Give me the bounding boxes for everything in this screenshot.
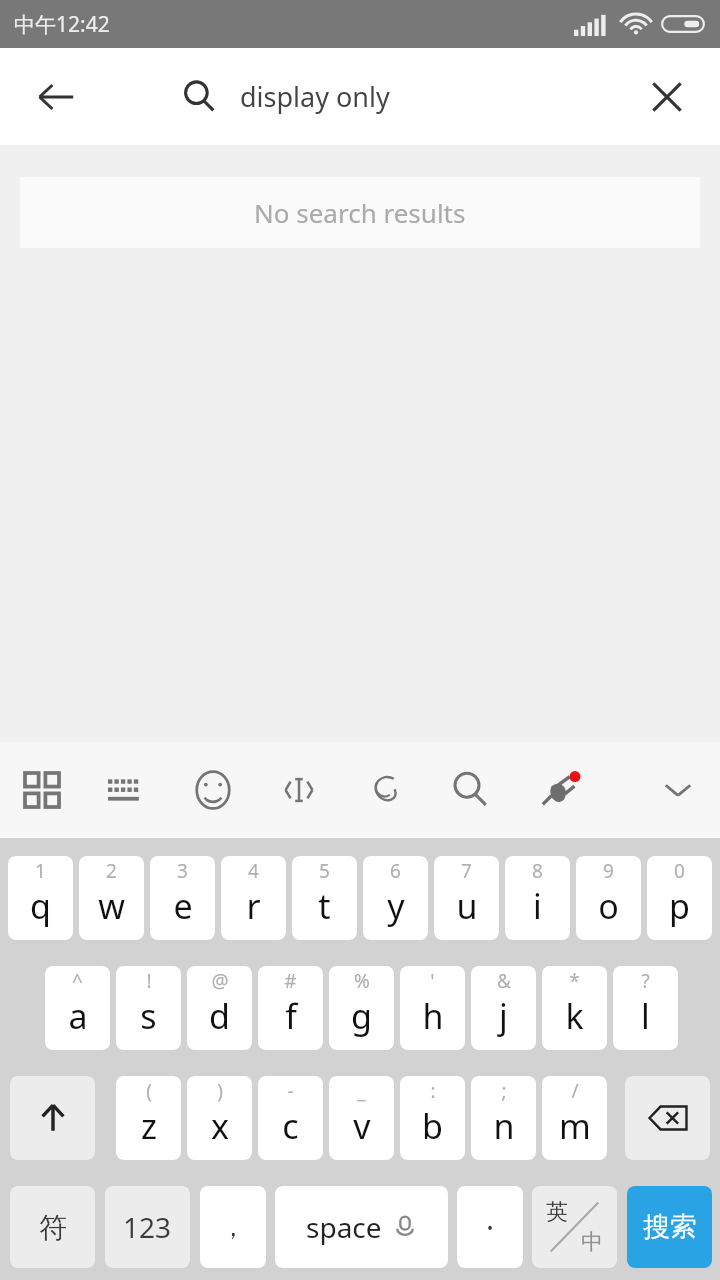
- staticText: q: [30, 883, 51, 929]
- staticText: b: [422, 1103, 443, 1149]
- staticText: a: [68, 993, 88, 1039]
- button[interactable]: ^: [45, 966, 110, 1050]
- button[interactable]: Switch language: [532, 1186, 617, 1268]
- button[interactable]: ): [187, 1076, 252, 1160]
- staticText: r: [246, 883, 261, 929]
- staticText: d: [209, 993, 230, 1039]
- button[interactable]: #: [258, 966, 323, 1050]
- button[interactable]: Search: [431, 750, 511, 830]
- button[interactable]: Shift: [10, 1076, 95, 1160]
- button[interactable]: Clear search: [628, 58, 706, 136]
- button[interactable]: Move cursor: [259, 750, 339, 830]
- staticText: /: [571, 1078, 579, 1104]
- staticText: 中: [581, 1228, 603, 1256]
- staticText: t: [318, 883, 331, 929]
- staticText: ^: [72, 968, 83, 994]
- staticText: _: [357, 1078, 366, 1104]
- button[interactable]: 8: [505, 856, 570, 940]
- button[interactable]: ;: [471, 1076, 536, 1160]
- button[interactable]: Apps: [2, 750, 82, 830]
- staticText: h: [422, 993, 444, 1039]
- staticText: n: [493, 1103, 515, 1149]
- staticText: @: [211, 968, 229, 994]
- staticText: ，: [220, 1211, 246, 1244]
- staticText: space: [306, 1208, 382, 1246]
- button[interactable]: Keyboard layout: [87, 750, 167, 830]
- staticText: u: [456, 883, 478, 929]
- staticText: 搜索: [643, 1210, 697, 1244]
- staticText: 6: [390, 858, 401, 884]
- staticText: i: [533, 883, 542, 929]
- staticText: l: [641, 993, 650, 1039]
- button[interactable]: Plugins: [522, 750, 602, 830]
- staticText: g: [351, 993, 372, 1039]
- button[interactable]: Search: [627, 1186, 712, 1268]
- button[interactable]: 9: [576, 856, 641, 940]
- staticText: ?: [641, 968, 650, 994]
- button[interactable]: *: [542, 966, 607, 1050]
- staticText: z: [141, 1103, 157, 1149]
- button[interactable]: Period: [457, 1186, 523, 1268]
- button[interactable]: 2: [79, 856, 144, 940]
- button[interactable]: Space: [275, 1186, 448, 1268]
- button[interactable]: ': [400, 966, 465, 1050]
- staticText: 3: [177, 858, 188, 884]
- staticText: 1: [35, 858, 46, 884]
- staticText: !: [146, 968, 152, 994]
- button[interactable]: Emoji: [173, 750, 253, 830]
- staticText: 4: [248, 858, 259, 884]
- staticText: #: [284, 968, 297, 994]
- staticText: ;: [501, 1078, 507, 1104]
- button[interactable]: _: [329, 1076, 394, 1160]
- button[interactable]: Backspace: [625, 1076, 710, 1160]
- staticText: %: [354, 968, 370, 994]
- button[interactable]: 1: [8, 856, 73, 940]
- staticText: y: [387, 883, 405, 929]
- staticText: 英: [546, 1198, 568, 1226]
- button[interactable]: Clipboard: [345, 750, 425, 830]
- staticText: 符: [39, 1210, 67, 1245]
- button[interactable]: Hide keyboard: [638, 750, 718, 830]
- button[interactable]: 0: [647, 856, 712, 940]
- staticText: (: [146, 1078, 152, 1104]
- staticText: 7: [461, 858, 472, 884]
- button[interactable]: !: [116, 966, 181, 1050]
- staticText: m: [559, 1103, 591, 1149]
- button[interactable]: %: [329, 966, 394, 1050]
- button[interactable]: /: [542, 1076, 607, 1160]
- staticText: e: [173, 883, 193, 929]
- staticText: 5: [319, 858, 330, 884]
- staticText: v: [353, 1103, 371, 1149]
- staticText: 2: [106, 858, 117, 884]
- staticText: 8: [532, 858, 543, 884]
- button[interactable]: Back: [16, 57, 96, 137]
- button[interactable]: -: [258, 1076, 323, 1160]
- button[interactable]: 5: [292, 856, 357, 940]
- staticText: *: [569, 968, 580, 994]
- button[interactable]: Numbers: [105, 1186, 190, 1268]
- staticText: 9: [603, 858, 614, 884]
- staticText: 123: [123, 1208, 172, 1246]
- button[interactable]: (: [116, 1076, 181, 1160]
- button[interactable]: Comma: [200, 1186, 266, 1268]
- button[interactable]: &: [471, 966, 536, 1050]
- staticText: j: [499, 993, 508, 1039]
- staticText: x: [211, 1103, 229, 1149]
- button[interactable]: 7: [434, 856, 499, 940]
- button[interactable]: :: [400, 1076, 465, 1160]
- button[interactable]: ?: [613, 966, 678, 1050]
- button[interactable]: Symbols: [10, 1186, 95, 1268]
- button[interactable]: 4: [221, 856, 286, 940]
- staticText: ): [217, 1078, 223, 1104]
- button[interactable]: No search results: [20, 177, 700, 248]
- button[interactable]: 6: [363, 856, 428, 940]
- staticText: 中午12:42: [14, 10, 110, 39]
- staticText: &: [497, 968, 511, 994]
- button[interactable]: 3: [150, 856, 215, 940]
- button[interactable]: @: [187, 966, 252, 1050]
- staticText: :: [430, 1078, 436, 1104]
- staticText: ': [430, 968, 435, 994]
- staticText: k: [565, 993, 584, 1039]
- staticText: display only: [240, 78, 390, 115]
- button[interactable]: display only: [182, 78, 390, 115]
